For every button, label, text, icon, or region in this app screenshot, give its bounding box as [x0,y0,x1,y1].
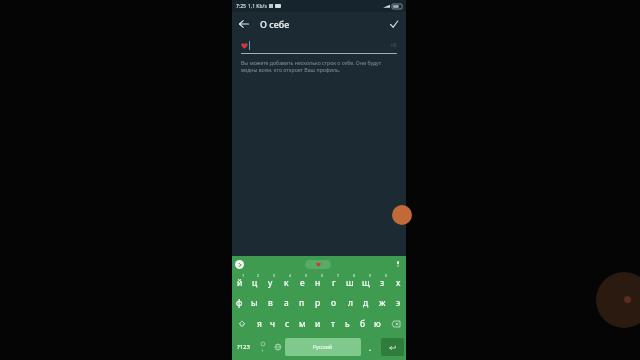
button[interactable]: Backspace [385,313,406,334]
staticText: й [237,277,243,289]
button[interactable]: н [310,272,326,293]
staticText: б [360,318,366,330]
staticText: ц [252,277,258,289]
button[interactable]: ц [247,272,262,293]
button[interactable]: ь [340,313,355,334]
staticText: э [396,297,401,309]
button[interactable]: Expand toolbar [235,260,244,269]
button[interactable]: р [310,293,326,313]
button[interactable]: п [294,293,310,313]
button[interactable]: а [278,293,294,313]
button[interactable]: у [262,272,278,293]
staticText: ь [345,318,350,330]
staticText: х [396,277,401,289]
button[interactable]: в [262,293,278,313]
staticText: ю [374,318,381,330]
button[interactable]: Shift [232,313,252,334]
staticText: видны всем, кто откроет Ваш профиль. [241,66,341,73]
staticText: е [300,277,305,289]
button[interactable]: ч [266,313,280,334]
staticText: Вы можете добавить несколько строк о себ… [241,59,382,66]
staticText: щ [362,277,370,289]
staticText: а [284,297,289,309]
staticText: т [331,318,335,330]
staticText: ш [346,277,354,289]
staticText: ?123 [237,343,250,351]
button[interactable]: т [325,313,340,334]
button[interactable]: д [358,293,374,313]
staticText: и [315,318,321,330]
button[interactable]: б [355,313,370,334]
staticText: п [299,297,305,309]
staticText: 8 [353,273,356,278]
button[interactable] [305,260,331,269]
staticText: Русский [313,344,333,351]
staticText: ч [270,318,276,330]
button[interactable]: ?123 [232,334,255,360]
button[interactable]: Emoji [255,334,270,360]
staticText: , [262,346,264,353]
staticText: г [332,277,336,289]
staticText: к [284,277,289,289]
button[interactable]: х [390,272,406,293]
staticText: н [315,277,321,289]
button[interactable]: я [252,313,266,334]
button[interactable]: . [361,334,379,360]
staticText: 4 [289,273,292,278]
staticText: д [363,297,369,309]
button[interactable]: Voice input [393,259,403,269]
button[interactable]: л [342,293,358,313]
button[interactable]: ж [374,293,390,313]
staticText: 68 [391,42,397,49]
staticText: 6 [321,273,324,278]
staticText: 2 [257,273,260,278]
staticText: р [315,297,321,309]
button[interactable]: г [326,272,342,293]
button[interactable]: о [326,293,342,313]
button[interactable]: Change language [270,334,285,360]
staticText: у [268,277,273,289]
button[interactable]: ы [247,293,262,313]
staticText: ы [251,297,258,309]
button[interactable]: и [310,313,325,334]
staticText: О себе [260,18,290,30]
button[interactable]: с [280,313,295,334]
button[interactable]: е [294,272,310,293]
staticText: 7:25 [236,3,246,10]
staticText: 0 [385,273,388,278]
staticText: я [257,318,262,330]
staticText: м [299,318,306,330]
staticText: ж [379,297,386,309]
staticText: 7 [337,273,340,278]
staticText: с [285,318,290,330]
staticText: о [331,297,337,309]
staticText: ф [236,297,243,309]
staticText: 1 [242,273,245,278]
button[interactable]: й [232,272,247,293]
staticText: 3 [273,273,276,278]
button[interactable]: з [374,272,390,293]
button[interactable]: э [390,293,406,313]
button[interactable]: ш [342,272,358,293]
staticText: л [348,297,353,309]
button[interactable]: ю [370,313,385,334]
button[interactable]: Done [382,12,406,36]
staticText: 5 [305,273,308,278]
staticText: . [369,342,372,353]
button[interactable]: ф [232,293,247,313]
button[interactable]: м [295,313,310,334]
button[interactable]: Русский [285,338,361,356]
staticText: 1,1 Kb/s [248,3,267,10]
button[interactable]: Enter [381,338,404,356]
staticText: в [268,297,273,309]
button[interactable]: Back [232,12,256,36]
staticText: 9 [369,273,372,278]
button[interactable]: к [278,272,294,293]
button[interactable]: щ [358,272,374,293]
staticText: з [380,277,385,289]
